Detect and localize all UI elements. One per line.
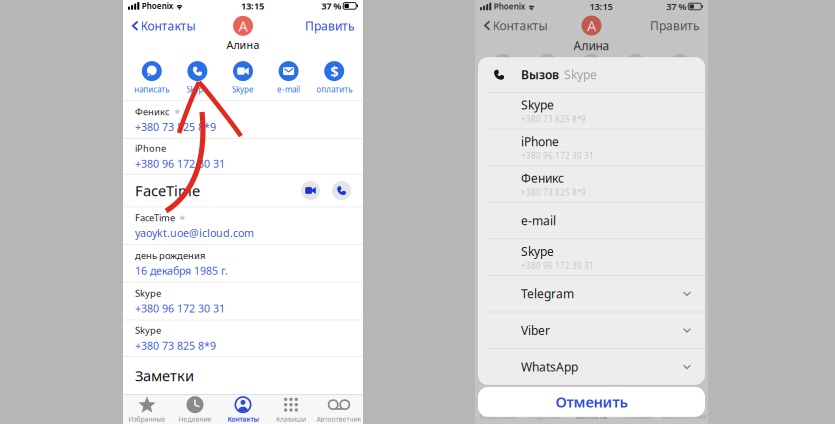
staticText: Избранные (128, 415, 165, 424)
staticText: iPhone (521, 133, 559, 149)
button[interactable]: e-mail (266, 61, 311, 95)
staticText: 37 % (321, 0, 341, 12)
button[interactable]: Skype (123, 283, 363, 320)
staticText: Telegram (521, 286, 574, 302)
staticText: Править (305, 18, 355, 34)
staticText: Автоответчик (316, 415, 361, 424)
staticText: $ (330, 61, 338, 81)
staticText: FaceTime (135, 211, 175, 224)
staticText: iPhone (135, 142, 166, 154)
staticText: Клавиши (623, 412, 653, 421)
staticText: Skype (521, 97, 554, 113)
button[interactable]: Недавние (171, 395, 219, 424)
button[interactable]: Отменить (478, 387, 705, 417)
button[interactable]: iPhone (478, 129, 705, 165)
staticText: 13:15 (589, 0, 612, 13)
staticText: A (238, 16, 247, 36)
staticText: Алина (226, 38, 259, 52)
button[interactable]: Viber (478, 312, 705, 348)
staticText: Алина (573, 37, 609, 53)
staticText: +380 73 825 8*9 (521, 114, 586, 124)
staticText: Skype (232, 84, 254, 95)
button[interactable]: Клавиши (267, 395, 315, 424)
staticText: Skype (135, 287, 161, 299)
button[interactable]: Контакты (123, 16, 195, 34)
button[interactable]: Автоответчик (315, 395, 363, 424)
button[interactable]: e-mail (478, 202, 705, 238)
staticText: e-mail (521, 212, 556, 228)
button[interactable]: Заметки (123, 357, 363, 394)
staticText: +380 73 825 8*9 (521, 187, 586, 198)
staticText: Контакты (227, 415, 258, 424)
staticText: Заметки (135, 366, 194, 385)
staticText: Недавние (178, 415, 211, 424)
button[interactable]: Skype (478, 93, 705, 129)
staticText: Skype (564, 67, 597, 82)
staticText: Skype (135, 324, 161, 336)
button[interactable]: Контакты (219, 395, 267, 424)
staticText: Автоответчик (662, 412, 707, 421)
button[interactable]: FaceTime (123, 174, 363, 206)
staticText: Skype (186, 84, 208, 95)
staticText: Править (650, 17, 700, 33)
button[interactable]: Skype (175, 61, 220, 95)
button[interactable]: Править (305, 16, 363, 34)
staticText: Phoenix (142, 1, 173, 11)
staticText: WhatsApp (521, 359, 578, 375)
staticText: Феникс (135, 105, 170, 118)
staticText: A (587, 16, 596, 35)
staticText: +380 96 172 30 31 (521, 150, 594, 161)
staticText: +380 96 172 30 31 (521, 260, 594, 271)
button[interactable]: FaceTime (123, 207, 363, 244)
staticText: yaoykt.uoe@icloud.com (135, 226, 254, 240)
staticText: Viber (521, 322, 550, 338)
staticText: Контакты (140, 18, 195, 34)
staticText: +380 73 825 8*9 (135, 120, 216, 134)
button[interactable]: Telegram (478, 276, 705, 312)
staticText: +380 96 172 30 31 (135, 301, 225, 315)
staticText: день рождения (135, 249, 205, 261)
staticText: Клавиши (276, 415, 306, 424)
staticText: Недавние (528, 412, 561, 421)
staticText: Skype (521, 243, 554, 259)
staticText: Вызов (521, 67, 559, 82)
button[interactable]: Феникс (123, 101, 363, 138)
button[interactable]: Skype (123, 320, 363, 356)
button[interactable]: Избранные (123, 395, 171, 424)
button[interactable]: $ (311, 61, 357, 95)
staticText: Phoenix (494, 1, 525, 12)
staticText: 37 % (666, 0, 686, 13)
staticText: 13:15 (241, 0, 264, 12)
staticText: Контакты (576, 412, 607, 421)
staticText: оплатить (316, 84, 352, 95)
staticText: +380 73 825 8*9 (135, 338, 216, 353)
button[interactable]: WhatsApp (478, 349, 705, 385)
button[interactable]: день рождения (123, 245, 363, 282)
button[interactable]: Феникс (478, 166, 705, 202)
staticText: Феникс (521, 170, 564, 186)
staticText: Контакты (492, 17, 547, 33)
staticText: FaceTime (135, 181, 200, 200)
staticText: написать (134, 84, 169, 95)
staticText: +380 96 172 30 31 (135, 156, 225, 171)
staticText: 16 декабря 1985 г. (135, 263, 228, 278)
staticText: e-mail (277, 84, 300, 95)
button[interactable]: написать (129, 61, 175, 95)
button[interactable]: Skype (478, 239, 705, 275)
button[interactable]: iPhone (123, 139, 363, 174)
staticText: Избранные (480, 412, 517, 421)
staticText: Отменить (555, 392, 627, 412)
button[interactable]: Skype (220, 61, 266, 95)
